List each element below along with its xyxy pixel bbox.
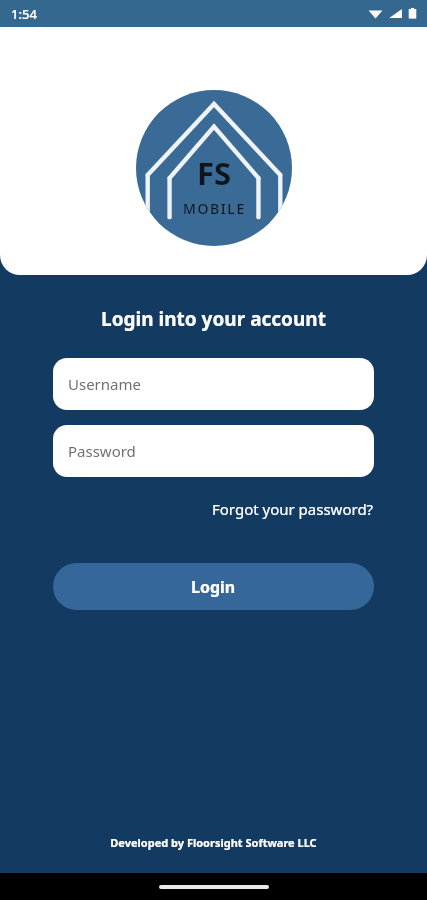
staticText: Developed by Floorsight Software LLC [0,835,427,850]
staticText: Login into your account [0,306,427,332]
other: Cellular signal [388,6,403,21]
staticText: Forgot your password? [212,499,374,519]
staticText: 1:54 [11,5,37,23]
other: Wi-Fi [368,6,383,21]
button[interactable]: Username [53,358,374,410]
staticText: MOBILE [183,199,246,218]
staticText: FS [197,152,232,194]
staticText: Username [68,374,141,394]
staticText: Login [191,576,236,598]
button[interactable]: Forgot your password? [210,495,376,523]
button[interactable]: Login [53,563,374,610]
other: Battery [408,6,417,21]
button[interactable]: Password [53,425,374,477]
staticText: Password [68,441,136,461]
